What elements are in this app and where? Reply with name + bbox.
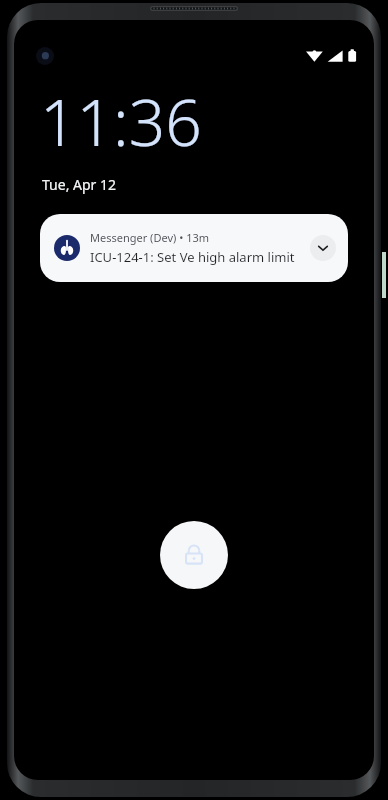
button[interactable]: Messenger (Dev) • 13m [40,214,348,282]
staticText: ICU-124-1: Set Ve high alarm limit is no… [90,248,304,266]
staticText: 11:36 [40,78,202,165]
button[interactable]: Unlock [160,521,228,589]
staticText: Tue, Apr 12 [42,175,117,194]
staticText: Messenger (Dev) • 13m [90,230,210,245]
button[interactable]: Expand notification [310,235,336,261]
